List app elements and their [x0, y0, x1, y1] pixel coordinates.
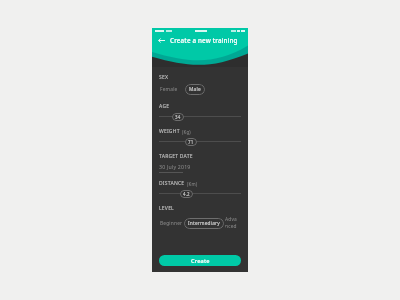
- staticText: WEIGHT: [159, 128, 180, 135]
- button[interactable]: Intermediary: [184, 218, 224, 229]
- button[interactable]: Female: [159, 85, 179, 94]
- button[interactable]: Slider 71: [159, 137, 241, 146]
- staticText: Male: [189, 86, 201, 93]
- staticText: 4.2: [183, 191, 190, 197]
- staticText: LEVEL: [159, 205, 174, 212]
- staticText: (Kg): [182, 129, 191, 135]
- button[interactable]: Beginner: [159, 219, 184, 228]
- staticText: Female: [160, 86, 178, 93]
- staticText: 30 July 2019: [159, 163, 191, 170]
- staticText: 34: [175, 114, 181, 120]
- button[interactable]: Back: [156, 35, 166, 45]
- button[interactable]: Male: [185, 84, 205, 95]
- button[interactable]: Create: [159, 255, 241, 266]
- staticText: AGE: [159, 103, 170, 110]
- button[interactable]: Slider 34: [159, 112, 241, 121]
- button[interactable]: Advanced: [224, 215, 241, 231]
- button[interactable]: Slider 4.2: [159, 189, 241, 198]
- staticText: Intermediary: [188, 220, 220, 227]
- staticText: (Km): [187, 181, 198, 187]
- staticText: DISTANCE: [159, 180, 185, 187]
- staticText: TARGET DATE: [159, 153, 193, 160]
- staticText: SEX: [159, 74, 169, 81]
- staticText: Advanced: [225, 216, 240, 230]
- staticText: Beginner: [160, 220, 183, 227]
- staticText: 71: [188, 139, 194, 145]
- staticText: Create a new training: [170, 36, 238, 44]
- staticText: Create: [191, 257, 210, 265]
